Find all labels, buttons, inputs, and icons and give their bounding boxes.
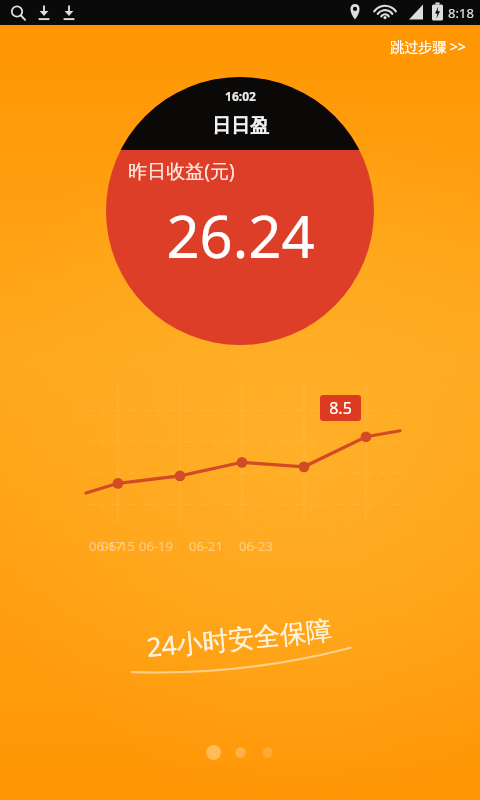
staticText: 06-19 [139,537,173,555]
button[interactable]: Page 3 [254,739,281,766]
staticText: 8.5 [329,397,352,419]
staticText: 06-21 [189,537,223,555]
staticText: 06-15 [101,537,135,555]
staticText: 昨日收益(元) [128,158,235,184]
staticText: 跳过步骤 >> [390,37,466,56]
button[interactable]: 跳过步骤 >> [376,31,480,62]
button[interactable]: 8.5 [320,395,361,421]
button[interactable]: 日日盈 watch face preview [106,77,374,345]
button[interactable]: Page 2 [227,739,254,766]
staticText: 16:02 [225,88,256,104]
staticText: 24小时安全保障 [145,611,333,665]
staticText: 日日盈 [212,114,269,138]
staticText: 26.24 [166,196,315,275]
button[interactable]: Page 1 [200,739,227,766]
staticText: 06-17 [89,537,123,555]
staticText: 8:18 [448,4,474,22]
staticText: 06-23 [239,537,273,555]
